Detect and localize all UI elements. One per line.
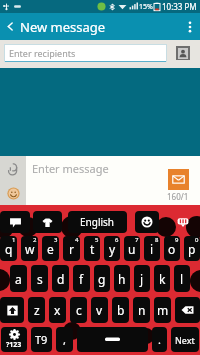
staticText: 6: [115, 236, 119, 244]
button[interactable]: Delete: [175, 297, 200, 323]
button[interactable]: r: [63, 236, 80, 261]
button[interactable]: y: [104, 236, 120, 261]
staticText: n: [138, 302, 146, 318]
button[interactable]: q: [0, 236, 17, 261]
staticText: 3: [54, 236, 58, 244]
button[interactable]: Keyboard settings: [170, 211, 196, 233]
staticText: 8: [155, 236, 159, 244]
button[interactable]: T9: [31, 327, 52, 352]
button[interactable]: g: [94, 265, 110, 292]
button[interactable]: Emoji: [135, 211, 159, 233]
staticText: Enter recipients: [9, 47, 76, 59]
button[interactable]: f: [73, 265, 90, 292]
staticText: 9: [175, 236, 179, 244]
staticText: T9: [35, 332, 48, 347]
button[interactable]: s: [31, 265, 48, 292]
button[interactable]: Themes: [33, 211, 62, 233]
staticText: English: [80, 215, 115, 229]
staticText: ?123: [6, 340, 22, 350]
button[interactable]: ,: [56, 327, 73, 352]
button[interactable]: Shift: [0, 297, 24, 323]
button[interactable]: c: [70, 297, 87, 323]
staticText: c: [76, 302, 82, 318]
button[interactable]: Add recipient from contacts: [176, 46, 190, 60]
button[interactable]: .: [152, 327, 167, 352]
button[interactable]: Next: [171, 327, 199, 352]
button[interactable]: b: [112, 297, 129, 323]
button[interactable]: Insert emoticon: [0, 182, 26, 205]
button[interactable]: d: [52, 265, 69, 292]
button[interactable]: p: [184, 236, 200, 261]
staticText: m: [157, 302, 169, 318]
staticText: g: [98, 271, 106, 287]
button[interactable]: Space: [77, 327, 148, 352]
staticText: 5: [95, 236, 99, 244]
staticText: u: [128, 241, 136, 257]
staticText: w: [25, 241, 35, 257]
staticText: a: [15, 271, 22, 287]
staticText: 1: [12, 236, 16, 244]
button[interactable]: o: [164, 236, 180, 261]
staticText: v: [96, 302, 103, 318]
button[interactable]: Navigate up: [0, 13, 20, 40]
button[interactable]: More options: [180, 13, 200, 40]
staticText: 0: [195, 236, 199, 244]
button[interactable]: v: [91, 297, 108, 323]
staticText: ,: [63, 332, 66, 347]
staticText: t: [90, 241, 95, 257]
staticText: New message: [20, 18, 106, 36]
staticText: 15%: [139, 2, 153, 12]
staticText: b: [117, 302, 125, 318]
button[interactable]: Enter recipients: [4, 44, 167, 62]
button[interactable]: Send message: [168, 169, 189, 190]
button[interactable]: u: [124, 236, 140, 261]
button[interactable]: m: [154, 297, 171, 323]
staticText: f: [79, 271, 84, 287]
button[interactable]: x: [49, 297, 66, 323]
button[interactable]: j: [134, 265, 150, 292]
staticText: 160/1: [167, 191, 189, 202]
staticText: q: [5, 241, 13, 257]
staticText: h: [118, 271, 126, 287]
staticText: Next: [175, 334, 195, 346]
button[interactable]: e: [42, 236, 59, 261]
staticText: z: [34, 302, 40, 318]
staticText: l: [180, 271, 184, 287]
staticText: o: [168, 241, 176, 257]
staticText: r: [69, 241, 74, 257]
button[interactable]: w: [21, 236, 38, 261]
button[interactable]: Symbols: [1, 327, 27, 352]
staticText: d: [57, 271, 65, 287]
button[interactable]: Translate: [0, 211, 30, 233]
staticText: 7: [135, 236, 139, 244]
button[interactable]: i: [144, 236, 160, 261]
staticText: y: [109, 241, 116, 257]
staticText: Enter message: [32, 161, 109, 176]
button[interactable]: h: [114, 265, 130, 292]
staticText: i: [150, 241, 154, 257]
button[interactable]: k: [154, 265, 170, 292]
staticText: s: [37, 271, 43, 287]
staticText: p: [188, 241, 196, 257]
staticText: j: [140, 271, 144, 287]
staticText: x: [54, 302, 61, 318]
button[interactable]: n: [133, 297, 150, 323]
button[interactable]: z: [28, 297, 45, 323]
staticText: .: [158, 332, 161, 347]
staticText: e: [47, 241, 54, 257]
button[interactable]: Attach: [0, 156, 26, 182]
staticText: 4: [75, 236, 79, 244]
staticText: 10:33 PM: [162, 1, 197, 12]
button[interactable]: English: [68, 211, 127, 233]
button[interactable]: a: [10, 265, 27, 292]
button[interactable]: l: [174, 265, 190, 292]
staticText: k: [159, 271, 166, 287]
button[interactable]: t: [84, 236, 100, 261]
staticText: 2: [33, 236, 37, 244]
